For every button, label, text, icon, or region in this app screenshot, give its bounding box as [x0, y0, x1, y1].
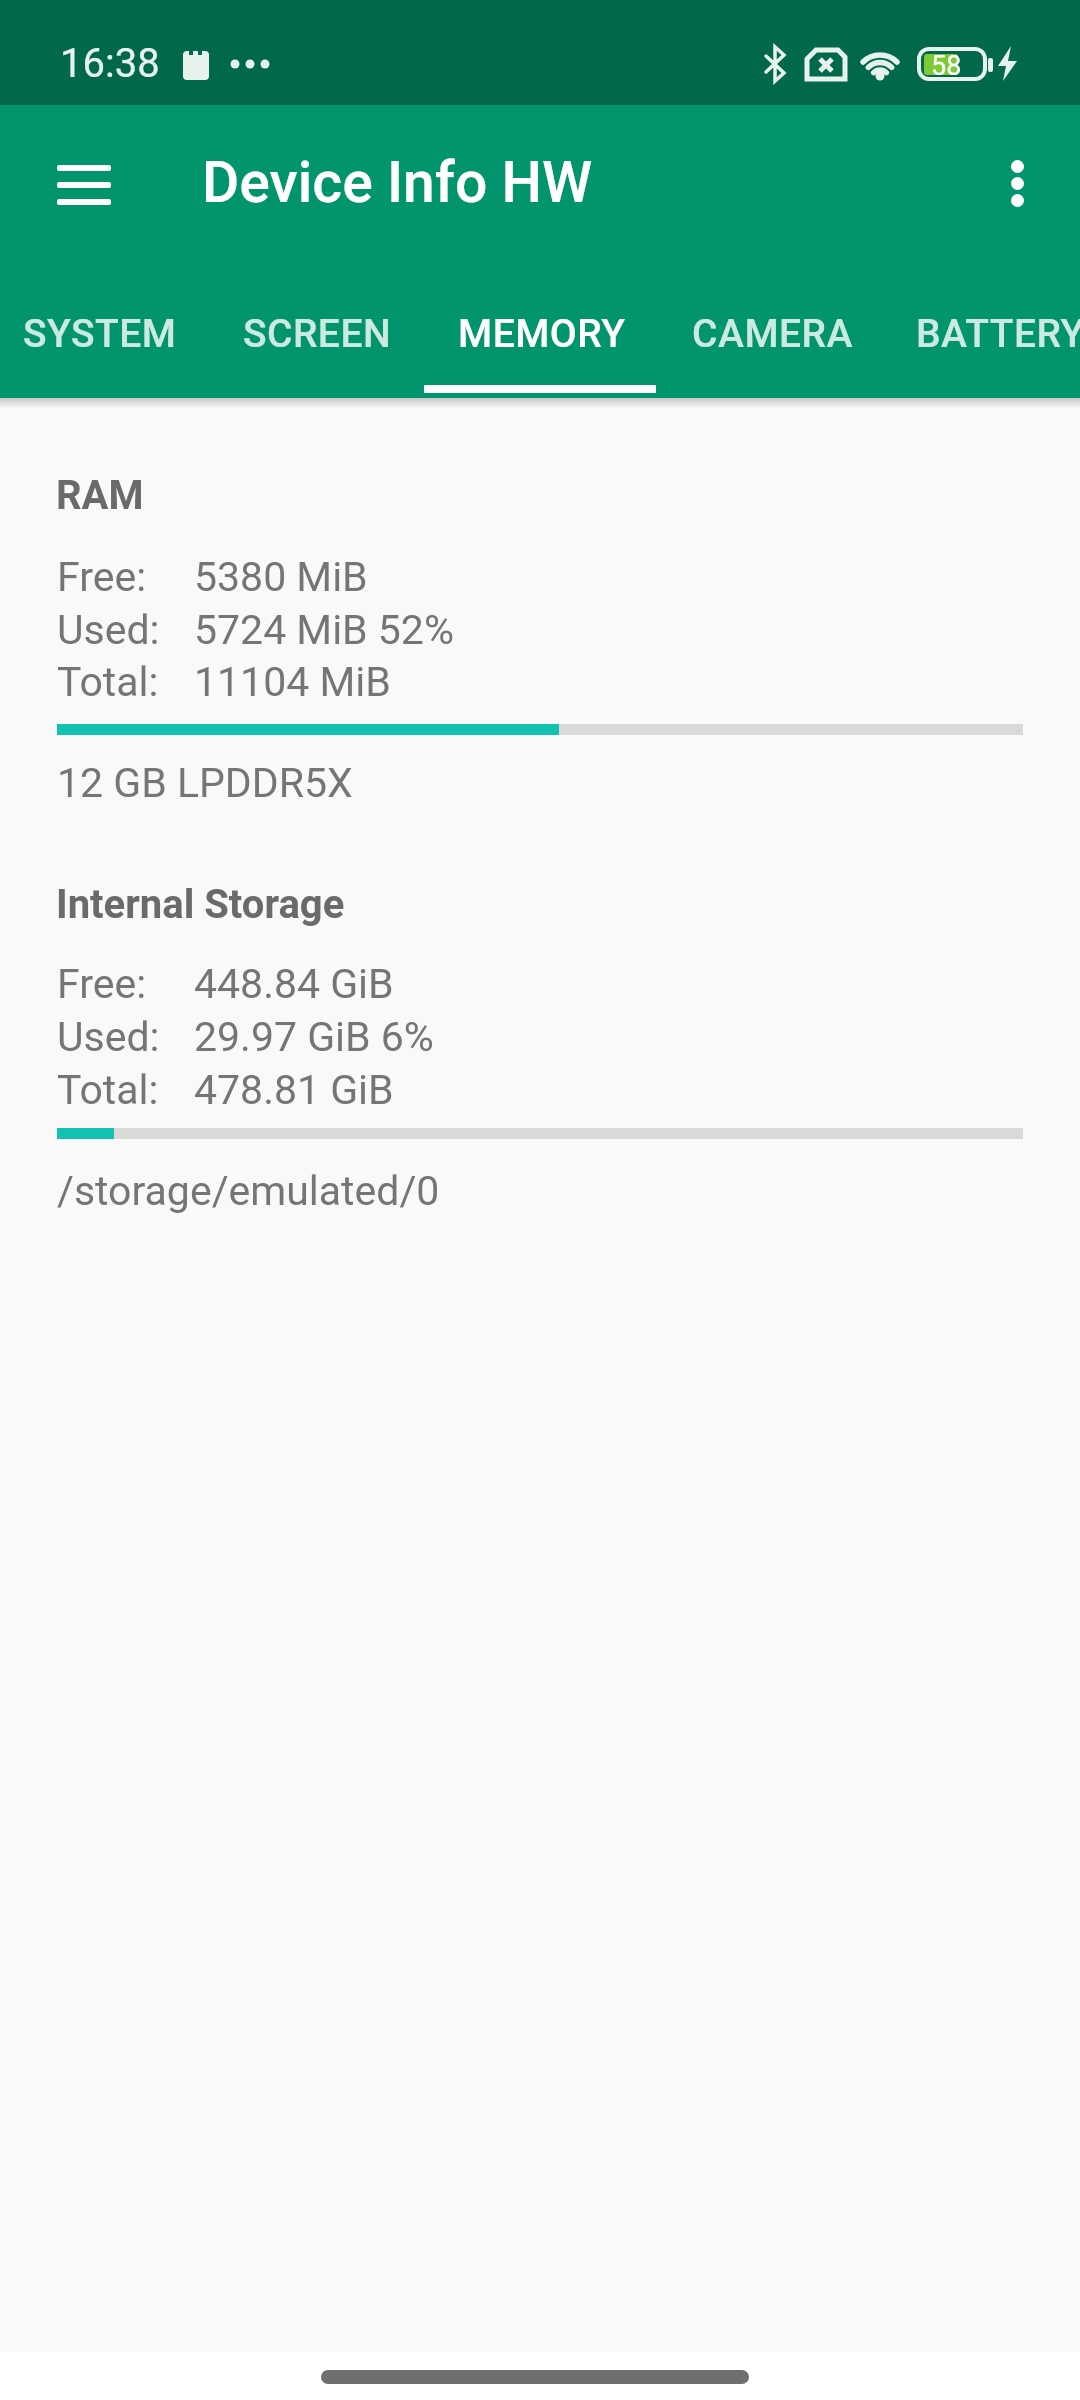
staticText: 5380 MiB — [194, 553, 368, 601]
button[interactable] — [30, 135, 138, 235]
staticText: 448.84 GiB — [194, 960, 394, 1008]
staticText: 5724 MiB 52% — [194, 606, 454, 654]
button[interactable] — [967, 133, 1067, 233]
staticText: Internal Storage — [56, 881, 345, 928]
staticText: Total: — [57, 1066, 159, 1114]
staticText: Used: — [57, 1013, 160, 1061]
staticText: Free: — [57, 553, 147, 601]
staticText: 16:38 — [60, 40, 160, 87]
staticText: RAM — [56, 472, 144, 519]
staticText: /storage/emulated/0 — [57, 1167, 440, 1215]
staticText: 58 — [931, 50, 962, 82]
staticText: Total: — [57, 658, 159, 706]
staticText: 11104 MiB — [194, 658, 391, 706]
staticText: 478.81 GiB — [194, 1066, 394, 1114]
staticText: 29.97 GiB 6% — [194, 1013, 434, 1061]
staticText: 12 GB LPDDR5X — [57, 759, 353, 807]
staticText: Free: — [57, 960, 147, 1008]
staticText: Used: — [57, 606, 160, 654]
staticText: Device Info HW — [202, 149, 593, 216]
